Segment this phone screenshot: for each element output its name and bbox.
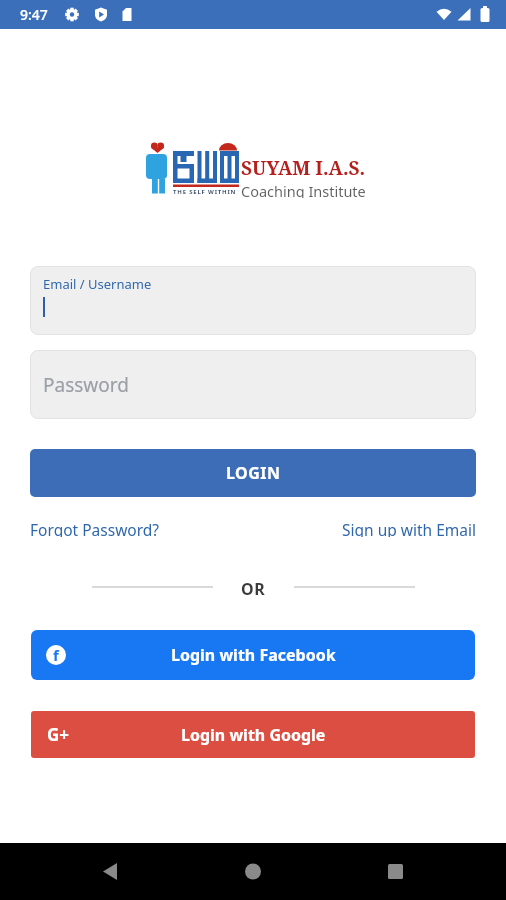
button[interactable] bbox=[0, 843, 168, 900]
button[interactable]: Forgot Password? bbox=[30, 519, 160, 537]
staticText: SUYAM I.A.S. bbox=[241, 155, 366, 181]
button[interactable] bbox=[337, 843, 506, 900]
button[interactable]: LOGIN bbox=[30, 449, 476, 497]
staticText: G+ bbox=[47, 723, 70, 746]
staticText: OR bbox=[241, 578, 266, 596]
button[interactable] bbox=[168, 843, 337, 900]
staticText: THE SELF WITHIN bbox=[173, 188, 237, 196]
staticText: Login with Google bbox=[181, 724, 326, 746]
button[interactable]: Password bbox=[30, 350, 476, 419]
staticText: LOGIN bbox=[226, 462, 281, 484]
staticText: Email / Username bbox=[43, 275, 152, 293]
button[interactable]: Sign up with Email bbox=[342, 519, 476, 537]
button[interactable]: f bbox=[31, 630, 475, 680]
staticText: 9:47 bbox=[20, 5, 48, 24]
button[interactable]: G+ bbox=[31, 711, 475, 758]
staticText: f bbox=[53, 645, 59, 665]
staticText: Coaching Institute bbox=[241, 181, 366, 198]
button[interactable]: Email / Username bbox=[30, 266, 476, 335]
staticText: Login with Facebook bbox=[171, 644, 336, 666]
staticText: Password bbox=[43, 372, 129, 398]
